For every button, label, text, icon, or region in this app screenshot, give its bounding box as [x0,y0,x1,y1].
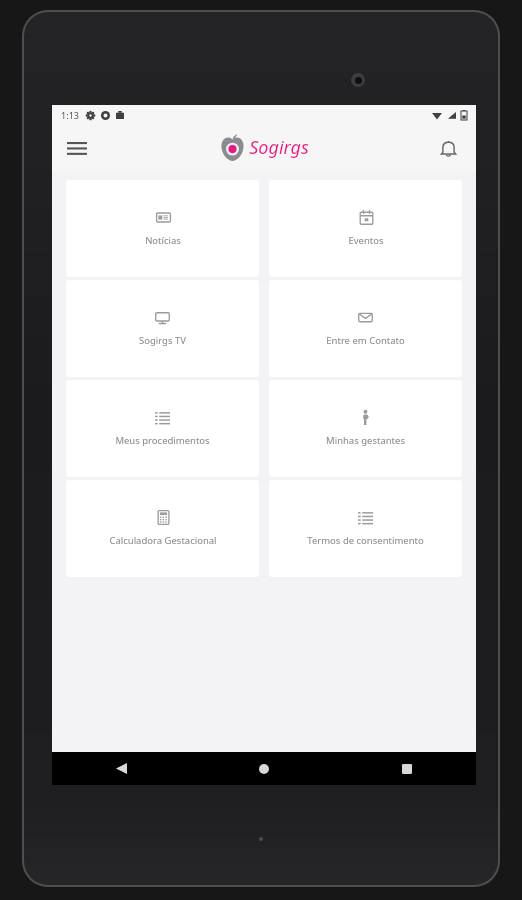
button[interactable]: Calculadora Gestacional [66,480,259,577]
button[interactable]: Sogirgs TV [66,280,259,377]
button[interactable]: Home [247,752,281,785]
button[interactable]: Eventos [269,180,462,277]
button[interactable]: Menu [57,128,97,168]
staticText: Sogirgs [249,135,309,160]
staticText: Entre em Contato [326,334,405,347]
button[interactable]: Back [104,752,138,785]
button[interactable]: Notifications [429,129,467,167]
button[interactable]: Notícias [66,180,259,277]
button[interactable]: Recent apps [390,752,424,785]
button[interactable]: Minhas gestantes [269,380,462,477]
staticText: Sogirgs TV [139,334,186,347]
staticText: 1:13 [61,109,79,121]
staticText: Minhas gestantes [326,434,405,447]
button[interactable]: Termos de consentimento [269,480,462,577]
staticText: Meus procedimentos [115,434,210,447]
button[interactable]: Meus procedimentos [66,380,259,477]
staticText: Eventos [348,234,384,247]
staticText: Termos de consentimento [307,534,424,547]
staticText: Notícias [145,234,181,247]
staticText: Calculadora Gestacional [109,534,217,547]
button[interactable]: Entre em Contato [269,280,462,377]
